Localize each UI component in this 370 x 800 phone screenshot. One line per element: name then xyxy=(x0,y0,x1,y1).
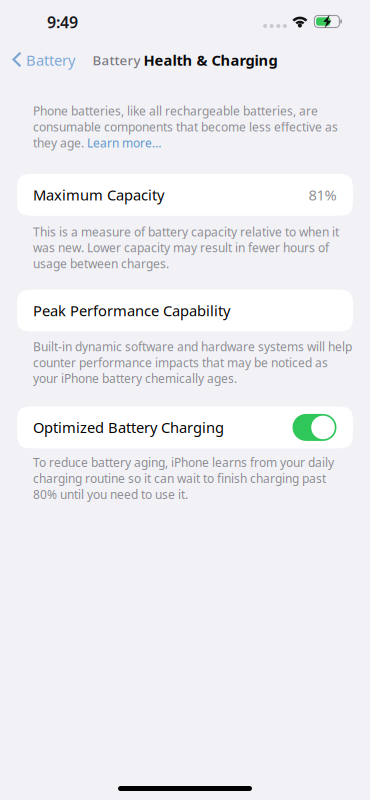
button[interactable]: Peak Performance Capability xyxy=(0,290,370,332)
staticText: 9:49 xyxy=(47,11,78,33)
staticText: Built-in dynamic software and hardware s… xyxy=(33,339,352,386)
staticText: To reduce battery aging, iPhone learns f… xyxy=(33,454,334,502)
staticText: Optimized Battery Charging xyxy=(33,418,224,437)
staticText: Battery xyxy=(26,50,75,70)
button[interactable]: Back to Battery xyxy=(0,44,85,76)
button[interactable]: Optimized Battery Charging xyxy=(292,414,336,441)
staticText: Battery xyxy=(92,51,143,69)
staticText: Peak Performance Capability xyxy=(33,301,230,320)
staticText: 81% xyxy=(308,185,336,205)
staticText: Health & Charging xyxy=(143,50,277,70)
staticText: Maximum Capacity xyxy=(33,185,164,205)
staticText: This is a measure of battery capacity re… xyxy=(33,224,339,272)
staticText: Phone batteries, like all rechargeable b… xyxy=(33,103,338,151)
